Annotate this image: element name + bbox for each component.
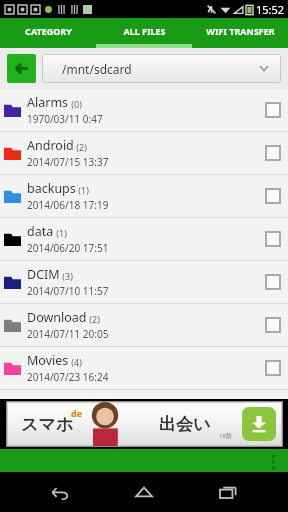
button[interactable]: DCIM [0, 261, 288, 304]
staticText: 出会い [159, 414, 211, 435]
staticText: 2014/06/20 17:51 [27, 241, 109, 255]
button[interactable]: Back [36, 472, 84, 512]
staticText: (1) [54, 227, 67, 239]
button[interactable]: Download [0, 304, 288, 347]
button[interactable]: /mnt/sdcard [42, 54, 281, 83]
staticText: 15:52 [256, 2, 285, 17]
button[interactable]: Home [120, 472, 168, 512]
staticText: (1) [76, 184, 89, 196]
button[interactable]: Select data [266, 232, 280, 246]
staticText: DCIM [27, 266, 60, 283]
staticText: 18禁 [219, 432, 232, 440]
staticText: Alarms [27, 94, 69, 111]
button[interactable]: Download [242, 407, 276, 441]
button[interactable]: Select Alarms [266, 103, 280, 117]
button[interactable]: Select Download [266, 318, 280, 332]
button[interactable]: Select Android [266, 146, 280, 160]
staticText: (4) [69, 356, 82, 368]
staticText: 2014/07/23 16:24 [27, 370, 109, 384]
button[interactable]: Select DCIM [266, 275, 280, 289]
button[interactable]: Select Movies [266, 361, 280, 375]
button[interactable]: Alarms [0, 89, 288, 132]
staticText: 2014/06/18 17:19 [27, 198, 109, 212]
staticText: Android [27, 137, 74, 154]
staticText: 1970/03/11 0:47 [27, 112, 103, 126]
staticText: 2014/07/11 20:05 [27, 327, 109, 341]
staticText: Download [27, 309, 87, 326]
staticText: (0) [69, 98, 82, 110]
button[interactable]: backups [0, 175, 288, 218]
staticText: スマホ [21, 414, 74, 435]
staticText: 2014/07/15 13:37 [27, 155, 109, 169]
staticText: /mnt/sdcard [62, 61, 132, 77]
button[interactable]: More options [264, 452, 282, 470]
button[interactable]: data [0, 218, 288, 261]
staticText: ALL FILES [123, 25, 166, 37]
staticText: de [71, 407, 83, 419]
button[interactable]: スマホ [0, 399, 288, 449]
staticText: WIFI TRANSFER [206, 25, 275, 37]
staticText: Movies [27, 352, 69, 369]
button[interactable]: Recents [204, 472, 252, 512]
staticText: (2) [74, 141, 87, 153]
button[interactable]: Movies [0, 347, 288, 390]
staticText: (2) [87, 313, 100, 325]
button[interactable]: Back [7, 54, 36, 83]
staticText: 2014/07/10 11:57 [27, 284, 109, 298]
button[interactable]: WIFI TRANSFER [192, 18, 288, 44]
button[interactable]: CATEGORY [0, 18, 96, 44]
staticText: CATEGORY [25, 25, 72, 37]
button[interactable]: Select backups [266, 189, 280, 203]
staticText: backups [27, 180, 76, 197]
button[interactable]: ALL FILES [96, 18, 192, 44]
button[interactable]: Android [0, 132, 288, 175]
staticText: (3) [60, 270, 73, 282]
staticText: data [27, 223, 54, 240]
